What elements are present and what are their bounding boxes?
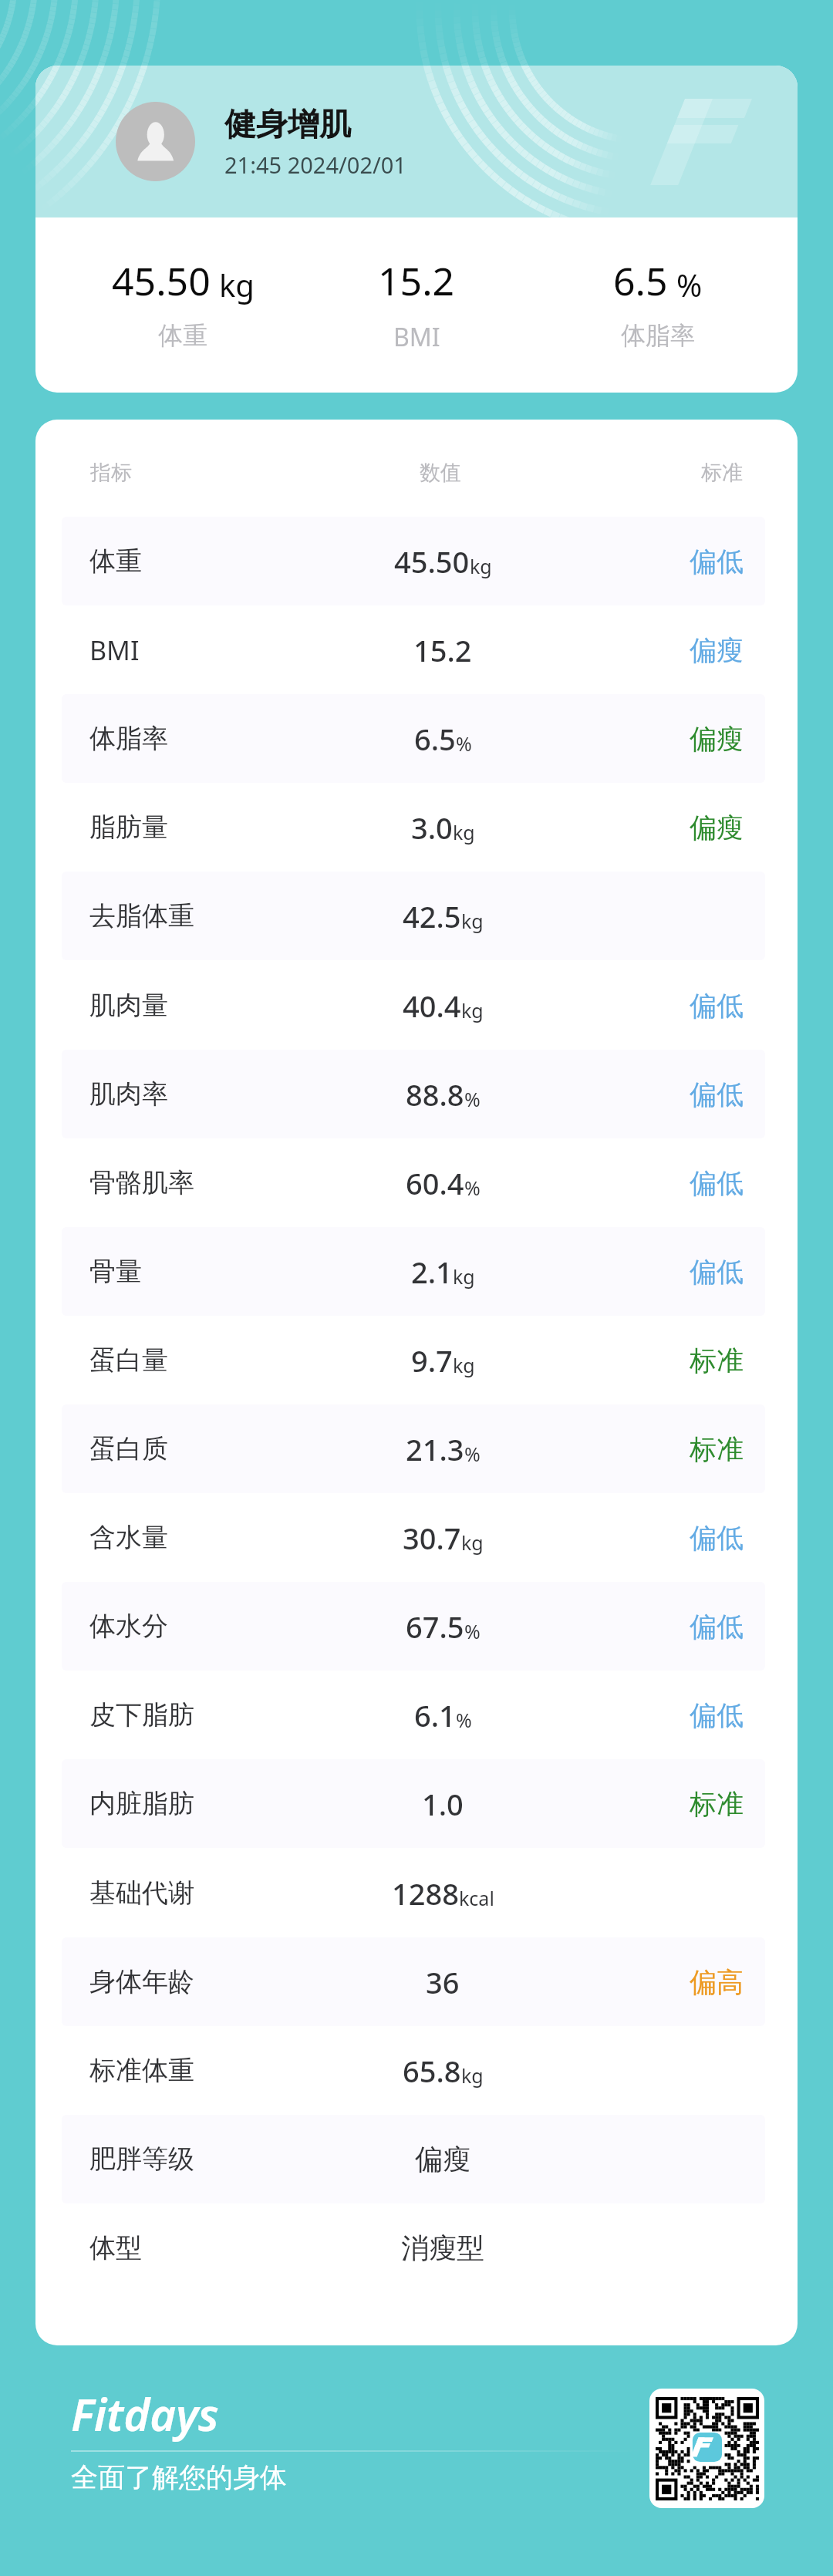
staticText: kg — [219, 264, 255, 305]
button[interactable]: 基础代谢 — [35, 1849, 798, 1937]
staticText: 偏低 — [690, 1698, 744, 1732]
staticText: kg — [470, 553, 492, 579]
button[interactable]: 健身增肌 — [35, 66, 798, 393]
staticText: 42.5 — [403, 896, 461, 936]
staticText: 标准 — [701, 460, 743, 486]
staticText: 2.1 — [411, 1252, 453, 1292]
staticText: % — [464, 1618, 481, 1644]
staticText: kg — [453, 1352, 475, 1378]
button[interactable]: 脂肪量 — [35, 783, 798, 872]
staticText: 体重 — [89, 545, 142, 578]
button[interactable]: 骨骼肌率 — [35, 1138, 798, 1227]
button[interactable]: 6.5 — [542, 217, 774, 393]
staticText: 全面了解您的身体 — [71, 2460, 287, 2494]
staticText: 消瘦型 — [401, 2230, 484, 2265]
button[interactable]: BMI — [35, 605, 798, 694]
button[interactable]: 肥胖等级 — [35, 2115, 798, 2203]
button[interactable]: 内脏脂肪 — [35, 1759, 798, 1848]
staticText: kg — [461, 2062, 484, 2089]
staticText: kg — [461, 908, 484, 934]
button[interactable]: 去脂体重 — [35, 872, 798, 960]
staticText: 偏低 — [690, 1166, 744, 1200]
staticText: 15.2 — [413, 630, 472, 670]
staticText: % — [464, 1441, 481, 1467]
staticText: 健身增肌 — [224, 105, 351, 145]
button[interactable]: 体型 — [35, 2203, 798, 2292]
staticText: 骨量 — [89, 1255, 142, 1288]
button[interactable]: QR code — [649, 2389, 764, 2508]
staticText: 45.50 — [112, 255, 211, 307]
staticText: 脂肪量 — [89, 811, 168, 844]
staticText: 肥胖等级 — [89, 2143, 194, 2176]
staticText: 21:45 2024/02/01 — [224, 150, 406, 180]
staticText: kg — [461, 1529, 484, 1556]
staticText: 偏低 — [690, 545, 744, 578]
staticText: % — [464, 1086, 481, 1112]
staticText: 偏低 — [690, 1521, 744, 1555]
staticText: 36 — [426, 1962, 460, 2002]
staticText: 88.8 — [406, 1074, 464, 1114]
staticText: 皮下脂肪 — [89, 1698, 194, 1731]
staticText: BMI — [89, 632, 140, 668]
staticText: 30.7 — [403, 1518, 461, 1558]
button[interactable]: 身体年龄 — [35, 1937, 798, 2026]
staticText: 65.8 — [403, 2051, 461, 2091]
button[interactable]: 含水量 — [35, 1493, 798, 1582]
staticText: kg — [453, 1263, 475, 1290]
button[interactable]: 骨量 — [35, 1227, 798, 1316]
button[interactable]: 标准体重 — [35, 2026, 798, 2115]
button[interactable]: 体重 — [35, 517, 798, 605]
staticText: 67.5 — [406, 1607, 464, 1647]
staticText: 基础代谢 — [89, 1876, 194, 1910]
staticText: 9.7 — [411, 1340, 453, 1381]
staticText: % — [456, 730, 472, 757]
staticText: 身体年龄 — [89, 1965, 194, 1998]
staticText: 体型 — [89, 2231, 142, 2264]
staticText: 6.1 — [414, 1695, 456, 1735]
staticText: 15.2 — [378, 255, 455, 307]
staticText: 6.5 — [414, 719, 456, 759]
staticText: 体脂率 — [621, 320, 695, 351]
button[interactable]: 45.50 — [67, 217, 298, 393]
button[interactable]: 蛋白质 — [35, 1404, 798, 1493]
staticText: 肌肉率 — [89, 1077, 168, 1111]
staticText: BMI — [393, 320, 440, 354]
staticText: 含水量 — [89, 1521, 168, 1554]
staticText: 45.50 — [394, 541, 470, 582]
staticText: 指标 — [90, 460, 132, 486]
staticText: 蛋白质 — [89, 1432, 168, 1465]
staticText: 标准 — [690, 1432, 744, 1466]
button[interactable]: 15.2 — [301, 217, 532, 393]
staticText: 40.4 — [403, 986, 461, 1026]
staticText: 60.4 — [406, 1163, 464, 1203]
staticText: 偏瘦 — [690, 633, 744, 667]
staticText: 1288 — [392, 1873, 459, 1913]
staticText: 标准体重 — [89, 2054, 194, 2087]
staticText: 偏低 — [690, 1077, 744, 1111]
staticText: 偏低 — [690, 1610, 744, 1644]
staticText: kg — [453, 819, 475, 845]
staticText: % — [464, 1175, 481, 1201]
staticText: 体重 — [158, 320, 207, 351]
staticText: 偏低 — [690, 1255, 744, 1289]
button[interactable]: 体脂率 — [35, 694, 798, 783]
staticText: 3.0 — [411, 808, 453, 848]
staticText: 数值 — [420, 460, 461, 486]
staticText: 6.5 — [613, 255, 668, 307]
staticText: 去脂体重 — [89, 899, 194, 932]
button[interactable]: 体水分 — [35, 1582, 798, 1671]
staticText: 体脂率 — [89, 722, 168, 755]
staticText: 1.0 — [422, 1784, 464, 1824]
staticText: 肌肉量 — [89, 989, 168, 1022]
button[interactable]: 肌肉率 — [35, 1050, 798, 1138]
staticText: 偏瘦 — [690, 811, 744, 845]
staticText: kcal — [459, 1885, 494, 1911]
staticText: 偏高 — [690, 1965, 744, 1999]
button[interactable]: 肌肉量 — [35, 961, 798, 1050]
staticText: 偏瘦 — [690, 722, 744, 756]
staticText: % — [676, 264, 703, 305]
staticText: 蛋白量 — [89, 1344, 168, 1377]
button[interactable]: 皮下脂肪 — [35, 1671, 798, 1759]
button[interactable]: 蛋白量 — [35, 1316, 798, 1404]
staticText: 体水分 — [89, 1610, 168, 1643]
